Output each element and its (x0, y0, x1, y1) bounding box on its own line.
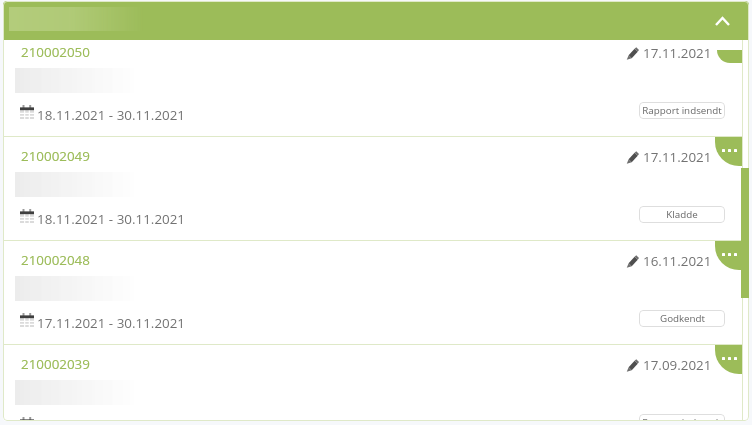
staticText: Kladde (666, 208, 698, 221)
staticText: 17.11.2021 - 30.11.2021 (37, 314, 186, 332)
button[interactable]: More options (4, 345, 743, 421)
staticText: 210002050 (21, 43, 90, 61)
button[interactable]: Rapport indsendt (639, 414, 725, 421)
button[interactable]: Kladde (639, 206, 725, 223)
button[interactable]: Godkendt (639, 310, 725, 327)
staticText: 18.11.2021 - 30.11.2021 (37, 106, 186, 124)
button[interactable]: More options (715, 137, 743, 166)
staticText: Godkendt (660, 312, 705, 325)
button[interactable]: Collapse (3, 1, 749, 40)
button[interactable]: Rapport indsendt (639, 102, 725, 119)
staticText: 17.09.2021 (643, 356, 712, 374)
staticText: 18.11.2021 - 30.11.2021 (37, 210, 186, 228)
staticText: 17.11.2021 (643, 44, 712, 62)
button[interactable]: More options (4, 241, 743, 344)
staticText: 210002048 (21, 251, 90, 269)
button[interactable]: More options (4, 40, 743, 136)
staticText: 210002049 (21, 147, 90, 165)
staticText: Rapport indsendt (642, 104, 722, 117)
staticText: 16.11.2021 (643, 252, 712, 270)
staticText: 18.09.2021 - 30.09.2021 (37, 418, 186, 421)
button[interactable]: More options (4, 137, 743, 240)
button[interactable]: More options (715, 345, 743, 374)
button[interactable]: More options (717, 50, 743, 63)
button[interactable]: Collapse (711, 10, 733, 32)
staticText: 210002039 (21, 355, 90, 373)
button[interactable]: More options (715, 241, 743, 270)
staticText: 17.11.2021 (643, 148, 712, 166)
staticText: Rapport indsendt (642, 416, 722, 421)
